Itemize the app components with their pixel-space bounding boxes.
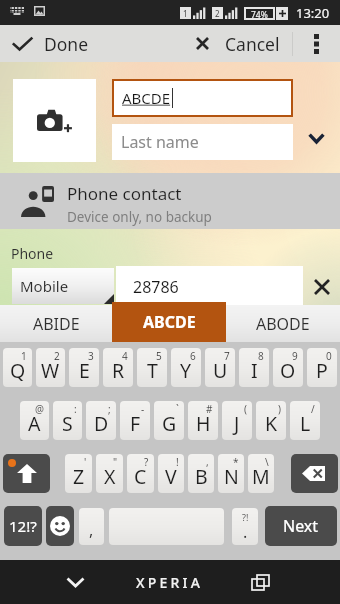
button[interactable]: Done [0, 25, 103, 62]
button[interactable]: C [127, 454, 154, 493]
staticText: 9 [292, 349, 298, 363]
button[interactable]: Y [171, 348, 201, 387]
button[interactable]: 12!? [4, 506, 42, 546]
button[interactable]: B [188, 454, 214, 493]
button[interactable]: M [248, 454, 274, 493]
staticText: 3 [88, 349, 94, 363]
staticText: Mobile [20, 276, 69, 296]
button[interactable]: L [290, 401, 320, 440]
button[interactable]: P [307, 348, 337, 387]
staticText: . [243, 521, 248, 543]
button[interactable]: N [218, 454, 244, 493]
staticText: V [165, 463, 177, 490]
button[interactable]: Phone contact [0, 173, 340, 229]
button[interactable]: X [96, 454, 123, 493]
staticText: ( [244, 402, 247, 416]
staticText: * [233, 455, 239, 469]
staticText: # [206, 402, 213, 416]
staticText: U [213, 357, 228, 384]
staticText: 74% [251, 9, 268, 18]
staticText: ' [84, 455, 87, 469]
staticText: 5 [156, 349, 162, 363]
staticText: 1 [21, 349, 27, 363]
button[interactable]: G [154, 401, 184, 440]
button[interactable]: I [239, 348, 269, 387]
staticText: S [62, 410, 73, 437]
staticText: T [147, 357, 158, 384]
button[interactable]: ABODE [226, 305, 340, 342]
button[interactable]: Next [265, 506, 337, 546]
button[interactable]: ABCDE [112, 302, 226, 341]
staticText: 13:20 [296, 4, 330, 22]
button[interactable]: D [86, 401, 116, 440]
staticText: Z [73, 463, 85, 490]
staticText: \ [265, 455, 269, 469]
staticText: R [112, 357, 125, 384]
button[interactable]: Hide keyboard [38, 560, 113, 604]
staticText: B [195, 463, 208, 490]
staticText: ; [108, 402, 111, 416]
button[interactable]: Clear phone number [303, 266, 340, 307]
staticText: L [300, 410, 311, 437]
staticText: ` [176, 402, 179, 416]
button[interactable]: V [158, 454, 184, 493]
button[interactable]: Cancel [186, 25, 292, 62]
button[interactable]: Recent apps [225, 560, 295, 604]
button[interactable]: Space [109, 508, 224, 545]
button[interactable]: W [36, 348, 65, 387]
staticText: ABCDE [143, 311, 196, 333]
button[interactable]: Z [65, 454, 92, 493]
button[interactable]: Add photo [13, 79, 96, 162]
button[interactable]: A [20, 401, 49, 440]
staticText: Last name [121, 131, 199, 153]
staticText: , [89, 519, 94, 541]
button[interactable]: Delete [291, 454, 338, 493]
button[interactable]: More options [293, 25, 340, 62]
button[interactable]: Emoji [46, 506, 74, 546]
staticText: 6 [190, 349, 196, 363]
button[interactable]: K [256, 401, 286, 440]
staticText: K [265, 410, 278, 437]
staticText: ? [144, 455, 149, 469]
button[interactable]: U [205, 348, 235, 387]
button[interactable]: ABIDE [0, 305, 112, 342]
staticText: F [130, 410, 141, 437]
button[interactable]: 28786 [116, 266, 303, 308]
staticText: ABODE [256, 313, 310, 335]
staticText: E [79, 357, 90, 384]
button[interactable]: ?! [232, 508, 258, 545]
staticText: Done [44, 32, 89, 56]
staticText: O [280, 357, 296, 384]
staticText: XPERIA [136, 573, 204, 592]
button[interactable]: J [222, 401, 252, 440]
button[interactable]: F [120, 401, 150, 440]
staticText: 2 [215, 8, 220, 19]
staticText: 7 [224, 349, 230, 363]
button[interactable]: Mobile [12, 268, 114, 304]
staticText: ! [176, 455, 179, 469]
button[interactable]: O [273, 348, 303, 387]
staticText: / [311, 402, 315, 416]
staticText: Device only, no backup [67, 208, 212, 226]
button[interactable]: , [79, 508, 104, 545]
button[interactable]: Q [3, 348, 32, 387]
staticText: : [74, 402, 77, 416]
button[interactable]: T [137, 348, 167, 387]
button[interactable]: E [69, 348, 99, 387]
staticText: 12!? [9, 516, 37, 536]
button[interactable]: S [53, 401, 82, 440]
staticText: N [224, 463, 239, 490]
staticText: 8 [258, 349, 264, 363]
button[interactable]: R [103, 348, 133, 387]
button[interactable]: Expand name fields [293, 79, 340, 162]
staticText: ?! [242, 511, 249, 523]
staticText: Next [283, 515, 319, 537]
button[interactable]: H [188, 401, 218, 440]
staticText: - [141, 402, 145, 416]
staticText: Q [10, 357, 26, 384]
staticText: M [252, 463, 270, 490]
button[interactable]: Shift [3, 454, 50, 493]
staticText: J [234, 410, 240, 437]
staticText: Cancel [225, 32, 280, 56]
staticText: D [94, 410, 109, 437]
